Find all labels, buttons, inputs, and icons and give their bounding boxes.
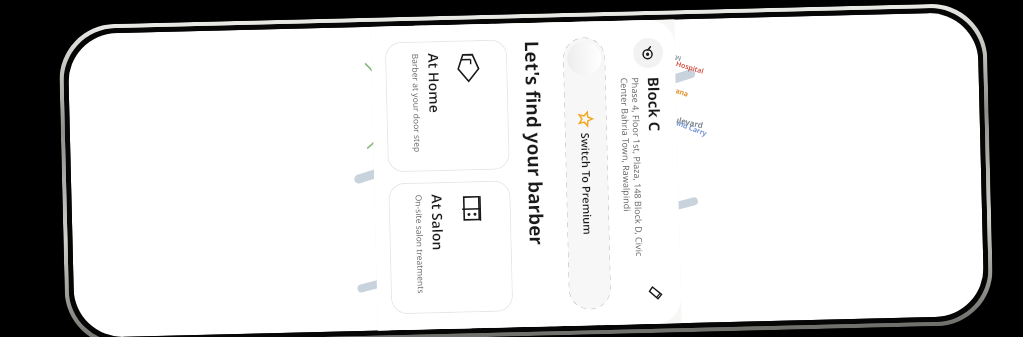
staticText: Southern Ave 174 (538, 202, 598, 227)
button[interactable]: At Salon (388, 180, 513, 314)
button[interactable]: Switch To Premium (563, 37, 611, 310)
staticText: Block C (644, 77, 665, 132)
staticText: Main Blvd (650, 47, 682, 64)
button[interactable]: At Home (385, 39, 510, 172)
staticText: Chaayé Khana (640, 73, 690, 101)
button[interactable]: Block C (617, 38, 669, 307)
staticText: Barber at your door step (409, 53, 423, 153)
staticText: At Home (424, 53, 444, 113)
button[interactable]: Edit address (643, 279, 669, 306)
staticText: ipoo (657, 26, 672, 38)
staticText: Phase 4, Floor 1st, Plaza, 148 Block D, … (618, 77, 646, 273)
staticText: At Salon (427, 194, 448, 251)
staticText: Let's find your barber (519, 40, 550, 246)
staticText: South East Boulevard (621, 99, 704, 132)
staticText: On-site salon treatments (412, 194, 427, 294)
staticText: Standard care Hospital (627, 43, 705, 79)
staticText: Punjab Cash and Carry (632, 101, 709, 141)
staticText: Switch To Premium (578, 132, 595, 236)
button[interactable]: Menu (583, 37, 620, 74)
